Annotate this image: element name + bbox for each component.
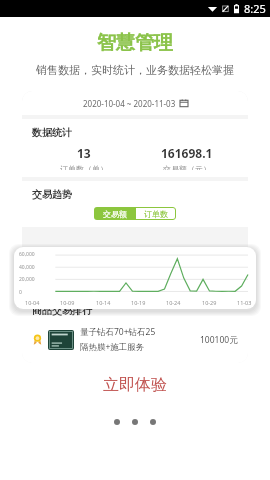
button[interactable]: Page 1 bbox=[114, 419, 120, 425]
staticText: 100100元 bbox=[200, 334, 238, 346]
button[interactable]: 立即体验 bbox=[93, 373, 177, 397]
staticText: 订单数（单） bbox=[60, 164, 108, 170]
staticText: 销售数据，实时统计，业务数据轻松掌握 bbox=[36, 63, 234, 77]
staticText: 60,000 bbox=[19, 251, 35, 258]
staticText: 10-04 bbox=[25, 299, 40, 306]
other: Top rank medal bbox=[32, 334, 43, 345]
staticText: 商品交易排行 bbox=[32, 304, 92, 317]
staticText: 10-19 bbox=[131, 299, 146, 306]
button[interactable]: 交易额 bbox=[94, 207, 135, 220]
staticText: 订单数 bbox=[144, 209, 168, 219]
staticText: 交易额（元） bbox=[163, 164, 211, 170]
other: Select date range bbox=[180, 99, 188, 107]
staticText: 智慧管理 bbox=[97, 31, 173, 55]
staticText: 13 bbox=[77, 145, 91, 161]
staticText: 数据统计 bbox=[32, 126, 72, 139]
button[interactable]: Page 3 bbox=[150, 419, 156, 425]
staticText: 隔热膜+施工服务 bbox=[80, 341, 145, 353]
staticText: 10-24 bbox=[166, 299, 181, 306]
staticText: 11-03 bbox=[237, 299, 252, 306]
button[interactable]: Top rank medal bbox=[32, 326, 238, 353]
button[interactable]: 2020-10-04 ~ 2020-11-03 bbox=[22, 91, 248, 115]
staticText: 交易趋势 bbox=[32, 188, 72, 201]
staticText: 161698.1 bbox=[161, 145, 213, 161]
staticText: 0 bbox=[19, 289, 22, 296]
staticText: 8:25 bbox=[244, 1, 266, 16]
staticText: 10-09 bbox=[60, 299, 75, 306]
staticText: 20,000 bbox=[19, 276, 35, 283]
staticText: 立即体验 bbox=[103, 375, 167, 395]
staticText: 量子钻石70+钻石25 bbox=[80, 326, 156, 338]
staticText: 40,000 bbox=[19, 264, 35, 271]
staticText: 2020-10-04 ~ 2020-11-03 bbox=[83, 98, 176, 109]
button[interactable]: Page 2 bbox=[132, 419, 138, 425]
staticText: 10-29 bbox=[202, 299, 217, 306]
button[interactable]: 订单数 bbox=[135, 207, 176, 220]
staticText: 交易额 bbox=[103, 209, 127, 219]
staticText: 10-14 bbox=[96, 299, 111, 306]
